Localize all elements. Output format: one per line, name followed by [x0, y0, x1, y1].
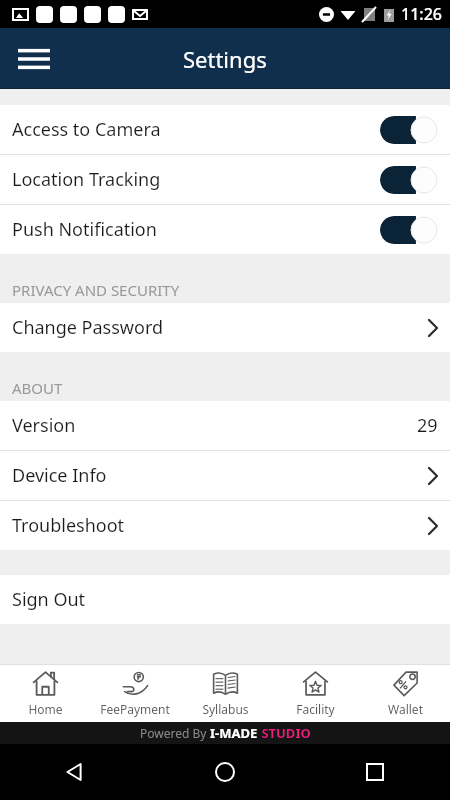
staticText: STUDIO	[258, 724, 311, 742]
button[interactable]: Access to Camera	[0, 105, 450, 154]
staticText: ABOUT	[12, 378, 63, 398]
staticText: PRIVACY AND SECURITY	[12, 280, 180, 300]
button[interactable]: Device Info	[0, 451, 450, 500]
staticText: Syllabus	[202, 701, 249, 717]
staticText: 11:26	[401, 3, 442, 25]
staticText: Troubleshoot	[12, 513, 125, 538]
button[interactable]: Facility	[270, 665, 360, 722]
staticText: Facility	[296, 701, 335, 717]
button[interactable]: Back	[0, 744, 150, 800]
staticText: FeePayment	[100, 701, 170, 717]
button[interactable]: Home	[150, 744, 300, 800]
staticText: Change Password	[12, 315, 164, 340]
button[interactable]: Troubleshoot	[0, 501, 450, 550]
button[interactable]: Version	[0, 401, 450, 450]
staticText: I-MADE	[210, 724, 258, 742]
staticText: Location Tracking	[12, 167, 161, 192]
staticText: Wallet	[388, 701, 423, 717]
button[interactable]: Sign Out	[0, 575, 450, 624]
button[interactable]: Recent apps	[300, 744, 450, 800]
button[interactable]: Home	[0, 665, 90, 722]
button[interactable]: Location Tracking	[0, 155, 450, 204]
staticText: Powered By	[140, 725, 210, 741]
staticText: 29	[417, 413, 438, 438]
button[interactable]: Syllabus	[180, 665, 270, 722]
button[interactable]: Push Notification	[0, 205, 450, 254]
staticText: Device Info	[12, 463, 107, 488]
staticText: Home	[28, 701, 63, 717]
button[interactable]: Open navigation menu	[10, 35, 58, 83]
staticText: Sign Out	[12, 587, 86, 612]
button[interactable]: Wallet	[360, 665, 450, 722]
button[interactable]: Change Password	[0, 303, 450, 352]
button[interactable]: FeePayment	[90, 665, 180, 722]
staticText: Push Notification	[12, 217, 157, 242]
staticText: Access to Camera	[12, 117, 161, 142]
staticText: Settings	[183, 44, 267, 74]
staticText: Version	[12, 413, 76, 438]
